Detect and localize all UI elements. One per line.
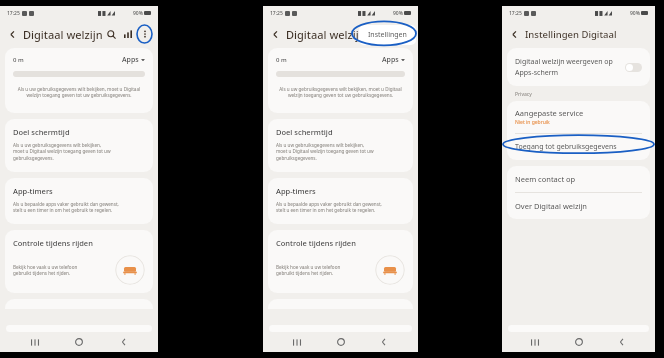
button[interactable]: Doel schermtijd (268, 119, 413, 172)
button[interactable]: More options (138, 27, 152, 41)
staticText: Digitaal welzijn weergeven op Apps-scher… (515, 57, 620, 77)
staticText: 0 m (276, 56, 287, 64)
button[interactable]: Search (104, 27, 118, 41)
staticText: Als u uw gebruiksgegevens wilt bekijken,… (13, 86, 145, 99)
button[interactable]: 0 m (13, 55, 145, 106)
button[interactable]: Apps (122, 55, 145, 65)
staticText: Bekijk hoe vaak u uw telefoon gebruikt t… (13, 264, 115, 276)
staticText: Controle tijdens rijden (13, 238, 93, 248)
button[interactable]: Back (374, 332, 394, 352)
staticText: Niet in gebruik (515, 119, 550, 126)
button[interactable]: Recents (25, 332, 45, 352)
button[interactable]: Back (508, 28, 521, 41)
staticText: 90% (133, 10, 143, 17)
button[interactable]: Controle tijdens rijden (268, 230, 413, 293)
staticText: 90% (393, 10, 403, 17)
staticText: App-timers (276, 186, 316, 196)
staticText: Digitaal welzijn (23, 27, 103, 42)
staticText: Doel schermtijd (13, 127, 70, 137)
staticText: App-timers (13, 186, 53, 196)
button[interactable]: Statistics (121, 27, 135, 41)
button[interactable]: Home (331, 332, 351, 352)
staticText: Bekijk hoe vaak u uw telefoon gebruikt t… (276, 264, 375, 276)
staticText: Als u bepaalde apps vaker gebruikt dan g… (276, 201, 382, 213)
staticText: Apps (382, 55, 399, 65)
button[interactable]: Instellingen (359, 25, 416, 45)
button[interactable]: Home (69, 332, 89, 352)
staticText: Instellingen Digitaal welzijn (525, 28, 649, 41)
button[interactable]: Controle tijdens rijden (5, 230, 153, 293)
button[interactable]: App-timers (5, 178, 153, 224)
button[interactable]: Neem contact op (507, 166, 650, 192)
button[interactable]: Apps (382, 55, 405, 65)
staticText: Over Digitaal welzijn (515, 201, 587, 211)
staticText: 90% (630, 10, 640, 17)
button[interactable]: 0 m (276, 55, 405, 106)
staticText: 17:25 (270, 10, 283, 17)
staticText: Toegang tot gebruiksgegevens toestaan (515, 142, 642, 152)
button[interactable]: Recents (287, 332, 307, 352)
staticText: Controle tijdens rijden (276, 238, 356, 248)
button[interactable]: Toggle (625, 63, 642, 72)
staticText: Privacy (515, 91, 532, 98)
button[interactable]: Back (612, 332, 632, 352)
staticText: Apps (122, 55, 139, 65)
button[interactable]: Doel schermtijd (5, 119, 153, 172)
button[interactable]: Over Digitaal welzijn (507, 193, 650, 219)
staticText: Digitaal welzijn (286, 27, 366, 42)
button[interactable]: Back (6, 28, 19, 41)
staticText: Als u uw gebruiksgegevens wilt bekijken,… (276, 86, 405, 99)
button[interactable]: Back (269, 28, 282, 41)
staticText: Aangepaste service (515, 108, 584, 118)
staticText: 0 m (13, 56, 24, 64)
button[interactable]: Driving monitor (375, 255, 405, 285)
staticText: 17:25 (7, 10, 20, 17)
button[interactable]: Home (569, 332, 589, 352)
staticText: Als u bepaalde apps vaker gebruikt dan g… (13, 201, 119, 213)
staticText: Als u uw gebruiksgegevens wilt bekijken,… (13, 142, 111, 161)
button[interactable]: Digitaal welzijn weergeven op Apps-scher… (507, 48, 650, 86)
button[interactable]: Recents (525, 332, 545, 352)
button[interactable]: Toegang tot gebruiksgegevens toestaan (507, 134, 650, 160)
button[interactable]: Driving monitor (115, 255, 145, 285)
button[interactable]: Back (114, 332, 134, 352)
staticText: Als u uw gebruiksgegevens wilt bekijken,… (276, 142, 374, 161)
staticText: Instellingen (368, 30, 407, 40)
button[interactable]: App-timers (268, 178, 413, 224)
staticText: Neem contact op (515, 174, 576, 184)
button[interactable]: Aangepaste service (507, 101, 650, 133)
staticText: 17:25 (509, 10, 522, 17)
staticText: Doel schermtijd (276, 127, 333, 137)
